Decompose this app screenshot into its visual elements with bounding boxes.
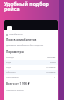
- staticText: Москва: [47, 56, 56, 59]
- staticText: Всего от 1 990 ₽: [6, 82, 30, 86]
- button[interactable]: Откуда: [4, 55, 58, 60]
- button[interactable]: Показать рейсы: [4, 88, 58, 93]
- button[interactable]: Обратно: [4, 70, 58, 75]
- staticText: Удобный подбор рейса: [4, 0, 49, 13]
- button[interactable]: Авиабилеты: [4, 33, 58, 36]
- staticText: Пассажиры: [6, 76, 19, 79]
- staticText: 1: [54, 76, 56, 79]
- button[interactable]: Tab: [7, 26, 12, 30]
- button[interactable]: Пассажиры: [4, 75, 58, 80]
- staticText: Откуда: [6, 56, 14, 59]
- staticText: Авиабилеты: [9, 33, 23, 36]
- staticText: Туда: [6, 66, 11, 69]
- staticText: 19 июня: [46, 71, 56, 74]
- staticText: Обратно: [6, 71, 16, 74]
- staticText: Параметры: [6, 50, 24, 54]
- staticText: Сочи: [50, 61, 56, 64]
- staticText: Поиск авиабилетов: [6, 38, 37, 42]
- staticText: Показать рейсы: [6, 89, 24, 92]
- button[interactable]: Куда: [4, 60, 58, 65]
- staticText: 12 июня: [46, 66, 56, 69]
- staticText: Куда: [6, 61, 12, 64]
- staticText: Дешёвые авиабилеты без наценок: [6, 44, 44, 47]
- button[interactable]: Туда: [4, 65, 58, 70]
